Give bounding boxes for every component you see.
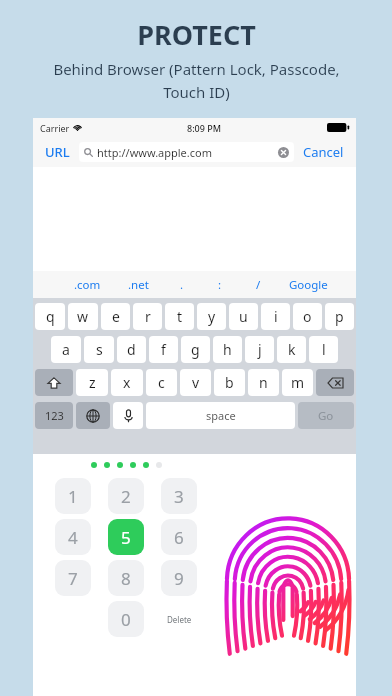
staticText: c xyxy=(158,373,165,392)
button[interactable]: 3 xyxy=(161,478,197,514)
button[interactable]: 1 xyxy=(55,478,91,514)
staticText: r xyxy=(145,307,151,326)
staticText: h xyxy=(223,340,232,359)
staticText: x xyxy=(123,373,131,392)
staticText: Google xyxy=(289,277,328,293)
button[interactable]: space xyxy=(146,402,295,429)
staticText: q xyxy=(46,307,55,326)
button[interactable]: http://www.apple.com xyxy=(79,142,294,162)
button[interactable]: 8 xyxy=(108,560,144,596)
button[interactable]: a xyxy=(51,336,81,363)
staticText: . xyxy=(180,277,184,293)
button[interactable]: .com xyxy=(61,271,114,298)
staticText: j xyxy=(258,340,262,359)
button[interactable]: p xyxy=(325,303,354,330)
button[interactable]: 0 xyxy=(108,601,144,637)
staticText: Delete xyxy=(167,614,192,625)
staticText: t xyxy=(177,307,183,326)
button[interactable]: v xyxy=(180,369,211,396)
staticText: v xyxy=(192,373,200,392)
staticText: 2 xyxy=(121,485,131,508)
button[interactable]: Shift xyxy=(35,369,73,396)
button[interactable]: Delete xyxy=(161,601,197,637)
button[interactable]: f xyxy=(149,336,178,363)
button[interactable]: o xyxy=(293,303,322,330)
button[interactable]: Dictate xyxy=(113,402,143,429)
staticText: 6 xyxy=(174,526,184,549)
button[interactable]: c xyxy=(146,369,177,396)
button[interactable]: 7 xyxy=(55,560,91,596)
button[interactable]: h xyxy=(213,336,242,363)
button[interactable]: Clear text xyxy=(278,147,289,158)
staticText: l xyxy=(322,340,326,359)
staticText: b xyxy=(225,373,234,392)
button[interactable]: e xyxy=(101,303,130,330)
staticText: .com xyxy=(74,277,101,293)
staticText: Behind Browser (Pattern Lock, Passcode, … xyxy=(53,59,340,102)
staticText: 5 xyxy=(121,526,131,549)
staticText: y xyxy=(208,307,216,326)
staticText: .net xyxy=(128,277,149,293)
staticText: PROTECT xyxy=(137,16,256,53)
button[interactable]: : xyxy=(201,271,239,298)
button[interactable]: b xyxy=(214,369,245,396)
button[interactable]: .net xyxy=(114,271,163,298)
staticText: i xyxy=(274,307,278,326)
button[interactable]: z xyxy=(76,369,108,396)
staticText: : xyxy=(218,277,222,293)
button[interactable]: r xyxy=(133,303,162,330)
button[interactable]: Google xyxy=(277,271,340,298)
staticText: space xyxy=(206,408,236,423)
staticText: Go xyxy=(318,408,334,424)
button[interactable]: 5 xyxy=(108,519,144,555)
button[interactable]: 9 xyxy=(161,560,197,596)
button[interactable]: Go xyxy=(298,402,354,429)
button[interactable]: q xyxy=(35,303,65,330)
button[interactable]: 4 xyxy=(55,519,91,555)
staticText: f xyxy=(161,340,166,359)
button[interactable]: i xyxy=(261,303,290,330)
staticText: u xyxy=(239,307,248,326)
staticText: z xyxy=(89,373,96,392)
staticText: 1 xyxy=(68,485,78,508)
staticText: 8:09 PM xyxy=(187,122,221,134)
button[interactable]: Backspace xyxy=(316,369,354,396)
button[interactable]: 123 xyxy=(35,402,73,429)
staticText: w xyxy=(77,307,89,326)
button[interactable]: g xyxy=(181,336,210,363)
staticText: e xyxy=(112,307,120,326)
staticText: http://www.apple.com xyxy=(97,145,212,160)
button[interactable]: s xyxy=(84,336,114,363)
staticText: k xyxy=(288,340,296,359)
button[interactable]: t xyxy=(165,303,194,330)
button[interactable]: m xyxy=(282,369,313,396)
staticText: o xyxy=(303,307,312,326)
staticText: URL xyxy=(45,143,70,161)
button[interactable]: 2 xyxy=(108,478,144,514)
staticText: 8 xyxy=(121,567,131,590)
button[interactable]: y xyxy=(197,303,226,330)
staticText: p xyxy=(335,307,344,326)
button[interactable]: u xyxy=(229,303,258,330)
staticText: m xyxy=(291,373,305,392)
staticText: 0 xyxy=(121,608,131,631)
staticText: n xyxy=(259,373,268,392)
button[interactable]: URL xyxy=(43,141,72,163)
button[interactable]: 6 xyxy=(161,519,197,555)
button[interactable]: Change keyboard language xyxy=(76,402,110,429)
staticText: 123 xyxy=(45,408,64,423)
button[interactable]: l xyxy=(309,336,338,363)
staticText: a xyxy=(62,340,70,359)
button[interactable]: d xyxy=(117,336,146,363)
button[interactable]: / xyxy=(239,271,277,298)
button[interactable]: w xyxy=(68,303,98,330)
button[interactable]: Cancel xyxy=(301,141,346,163)
button[interactable]: . xyxy=(163,271,201,298)
other: Touch ID fingerprint xyxy=(223,516,353,646)
button[interactable]: j xyxy=(245,336,274,363)
button[interactable]: x xyxy=(111,369,143,396)
button[interactable]: n xyxy=(248,369,279,396)
button[interactable]: k xyxy=(277,336,306,363)
staticText: / xyxy=(256,277,261,293)
staticText: s xyxy=(96,340,103,359)
